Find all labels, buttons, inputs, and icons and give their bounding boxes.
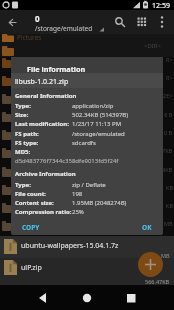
button[interactable] — [0, 236, 174, 258]
staticText: KB — [166, 202, 173, 209]
staticText: /storage/emulated — [35, 24, 93, 33]
staticText: 0 — [35, 13, 40, 24]
staticText: 2E> — [163, 92, 173, 99]
staticText: 1/23/17 11:13 PM — [72, 120, 122, 128]
staticText: Compression ratio: — [15, 208, 72, 216]
staticText: Last modification: — [15, 120, 69, 128]
staticText: 16 B — [161, 111, 173, 118]
staticText: MD5: — [15, 148, 31, 156]
staticText: 0 B — [164, 129, 173, 136]
staticText: Type: — [15, 102, 31, 110]
staticText: File count: — [15, 190, 46, 198]
staticText: COPY — [22, 223, 40, 232]
button[interactable] — [112, 14, 128, 30]
staticText: 25% — [72, 208, 84, 216]
button[interactable] — [138, 252, 163, 277]
staticText: Size: — [15, 111, 29, 119]
button[interactable] — [33, 288, 53, 308]
staticText: General Information — [15, 92, 77, 100]
button[interactable] — [0, 258, 174, 285]
staticText: Content size: — [15, 199, 54, 207]
staticText: zip / Deflate — [72, 181, 106, 189]
button[interactable] — [155, 14, 169, 30]
staticText: 502.34KB (514397B) — [72, 111, 129, 119]
staticText: KB — [166, 184, 173, 191]
staticText: Pictures — [17, 33, 42, 42]
staticText: <DIR> — [144, 42, 162, 50]
staticText: FS type: — [15, 139, 39, 147]
staticText: FS path: — [15, 130, 39, 138]
staticText: MB — [164, 220, 173, 227]
staticText: application/zip — [72, 102, 114, 110]
staticText: 4KB — [162, 166, 173, 173]
staticText: ulP.zip — [21, 263, 42, 273]
staticText: libusb-1.0.21.zip — [15, 77, 69, 87]
staticText: R> — [166, 74, 173, 81]
staticText: sdcardfs — [72, 139, 96, 147]
staticText: 7KB — [162, 147, 173, 154]
staticText: 198 — [72, 190, 83, 198]
staticText: MB — [161, 252, 170, 259]
button[interactable]: COPY — [14, 221, 48, 234]
staticText: OK — [142, 223, 152, 232]
staticText: Type: — [15, 181, 31, 189]
staticText: d5d483776f7344c358dfe9013fd5f24f — [15, 157, 119, 165]
staticText: ubuntu-wallpapers-15.04.1.7z — [21, 241, 119, 251]
button[interactable] — [77, 288, 97, 308]
button[interactable] — [6, 15, 20, 30]
button[interactable] — [134, 14, 150, 30]
staticText: 12:59 — [152, 1, 170, 11]
button[interactable]: OK — [134, 221, 160, 234]
staticText: /storage/emulated — [72, 130, 125, 138]
staticText: 1.95MB (2048274B) — [72, 199, 127, 207]
button[interactable] — [121, 288, 141, 308]
staticText: 566.47KB — [145, 278, 170, 285]
staticText: File information — [27, 64, 86, 74]
staticText: Archive Information — [15, 170, 76, 178]
staticText: R> — [166, 56, 173, 63]
